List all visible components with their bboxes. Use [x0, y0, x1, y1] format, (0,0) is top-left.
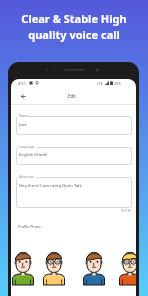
- button[interactable]: Profile photo option: [41, 252, 67, 285]
- staticText: 39%: [114, 81, 122, 86]
- staticText: English (Hindi): [19, 152, 48, 158]
- button[interactable]: About me: [16, 177, 132, 208]
- staticText: 4:51: [18, 81, 26, 86]
- button[interactable]: Profile photo option: [117, 252, 136, 285]
- staticText: LTE: [97, 81, 103, 86]
- staticText: Profile Photo:: [18, 224, 42, 229]
- button[interactable]: Back: [16, 89, 30, 103]
- staticText: quality voice call: [28, 27, 120, 42]
- button[interactable]: Profile photo option: [81, 252, 107, 285]
- staticText: Edit: [68, 93, 77, 99]
- staticText: 31/130: [121, 209, 131, 213]
- button[interactable]: Profile photo option: [11, 252, 36, 285]
- staticText: About me: [19, 174, 35, 178]
- staticText: Name: [19, 113, 29, 117]
- staticText: Clear & Stable High: [21, 11, 127, 26]
- button[interactable]: Name: [16, 116, 132, 135]
- button[interactable]: Language: [16, 147, 132, 165]
- staticText: Language: [19, 144, 35, 148]
- staticText: Hey there! I am using Open Talk: [19, 183, 82, 189]
- staticText: Jeet: [19, 122, 27, 128]
